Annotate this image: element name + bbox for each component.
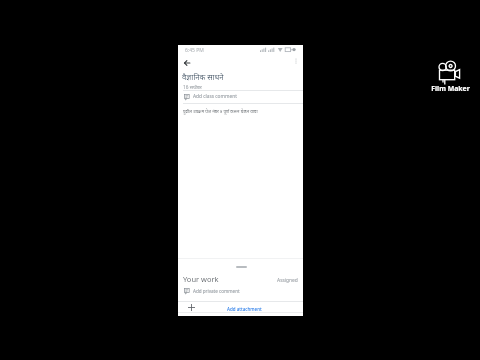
- button[interactable]: Add attachment: [178, 301, 303, 315]
- staticText: वैज्ञानिक साधने: [182, 72, 224, 82]
- staticText: Film Maker: [431, 84, 470, 93]
- staticText: Your work: [183, 274, 219, 284]
- staticText: Assigned: [277, 277, 298, 284]
- staticText: Add attachment: [227, 306, 262, 312]
- button[interactable]: More options: [291, 56, 301, 66]
- other: Add attachment: [187, 303, 195, 311]
- staticText: Add class comment: [193, 93, 237, 100]
- button[interactable]: Back: [182, 58, 192, 68]
- staticText: Add private comment: [193, 288, 240, 294]
- staticText: 16 सप्टेंबर: [183, 84, 202, 91]
- button[interactable]: Add private comment: [178, 286, 303, 296]
- staticText: पुढील उपक्रम पेज नंबर ४ पूर्ण करून घेऊन …: [183, 108, 258, 114]
- staticText: 6:45 PM: [185, 47, 204, 54]
- button[interactable]: Add class comment: [178, 91, 303, 102]
